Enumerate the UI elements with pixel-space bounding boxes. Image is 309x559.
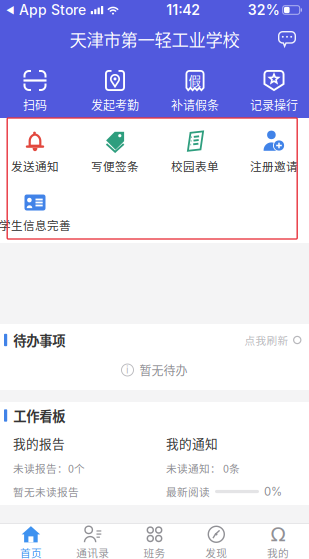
button[interactable]: 通讯录 <box>62 523 124 559</box>
staticText: 发送通知 <box>11 158 59 174</box>
staticText: 记录操行 <box>250 96 298 113</box>
staticText: 暂无待办 <box>139 361 187 379</box>
button[interactable]: Ω <box>247 523 309 559</box>
staticText: 发起考勤 <box>91 96 139 113</box>
button[interactable]: 发送通知 <box>11 132 59 174</box>
staticText: 假 <box>188 71 201 89</box>
staticText: App Store <box>15 1 86 18</box>
staticText: 首页 <box>20 545 42 559</box>
staticText: 最新阅读 <box>166 484 210 499</box>
staticText: 学生信息完善 <box>0 216 71 233</box>
staticText: 暂无未读报告 <box>13 484 79 499</box>
staticText: 扫码 <box>23 96 47 113</box>
button[interactable]: 消息 <box>274 27 300 51</box>
staticText: ◀ <box>6 5 15 16</box>
staticText: i <box>126 363 129 376</box>
staticText: 未读报告：0个 <box>13 460 85 476</box>
staticText: 我的 <box>267 545 289 559</box>
button[interactable]: 写便签条 <box>91 131 139 174</box>
staticText: Ω <box>271 523 286 546</box>
button[interactable]: 发起考勤 <box>91 70 139 113</box>
staticText: 校园表单 <box>171 158 219 174</box>
button[interactable]: 学生信息完善 <box>0 194 71 233</box>
button[interactable]: 注册邀请 <box>250 131 298 174</box>
staticText: 点我刷新 <box>244 332 288 348</box>
staticText: 11:42 <box>166 1 200 18</box>
staticText: 注册邀请 <box>250 158 298 174</box>
button[interactable]: 记录操行 <box>250 70 298 113</box>
staticText: 天津市第一轻工业学校 <box>69 26 239 52</box>
staticText: 未读通知： 0条 <box>166 460 240 476</box>
staticText: 班务 <box>143 545 165 559</box>
button[interactable]: 班务 <box>124 523 185 559</box>
staticText: 0% <box>264 485 282 498</box>
button[interactable]: 发现 <box>185 523 247 559</box>
staticText: 待办事项 <box>13 330 65 350</box>
button[interactable]: 假 <box>171 70 219 113</box>
button[interactable]: 扫码 <box>23 70 47 113</box>
button[interactable]: 校园表单 <box>171 131 219 174</box>
staticText: 通讯录 <box>76 545 109 559</box>
staticText: 写便签条 <box>91 158 139 174</box>
button[interactable]: 首页 <box>0 523 62 559</box>
staticText: 补请假条 <box>171 96 219 113</box>
staticText: 32% <box>248 1 280 18</box>
staticText: 我的报告 <box>13 434 65 452</box>
button[interactable]: 点我刷新 <box>244 326 302 354</box>
staticText: 我的通知 <box>166 434 218 452</box>
staticText: 发现 <box>205 545 227 559</box>
staticText: 工作看板 <box>13 406 65 425</box>
